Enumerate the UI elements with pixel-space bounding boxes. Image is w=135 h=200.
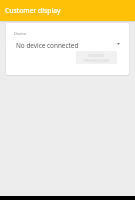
- button[interactable]: REQUEST PERMISSIONS: [76, 51, 117, 64]
- staticText: Customer display: [5, 6, 61, 15]
- staticText: REQUEST PERMISSIONS: [84, 53, 109, 63]
- button[interactable]: Device, No device connected: [12, 37, 123, 50]
- staticText: No device connected: [16, 41, 79, 50]
- staticText: Device: [14, 31, 27, 36]
